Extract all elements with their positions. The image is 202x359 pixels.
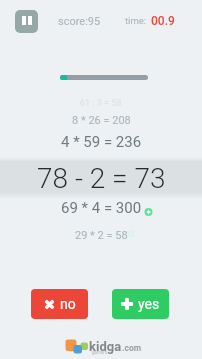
staticText: 61 : 3 = 58 (80, 98, 122, 109)
staticText: .com (122, 343, 142, 353)
staticText: time: (125, 15, 147, 26)
staticText: no (60, 296, 76, 312)
staticText: kidga (89, 339, 122, 354)
staticText: 69 * 4 = 300 (61, 199, 142, 217)
staticText: 00.9 (151, 14, 175, 28)
staticText: yes (138, 296, 160, 312)
button[interactable]: Pause (15, 10, 38, 33)
button[interactable]: no (31, 289, 88, 319)
staticText: 29 * 2 = 58 (75, 229, 128, 242)
staticText: 78 - 2 = 73 (37, 162, 166, 195)
staticText: score:95 (58, 15, 101, 28)
staticText: gamers (92, 350, 108, 355)
staticText: 8 * 26 = 208 (72, 114, 131, 127)
staticText: 4 * 59 = 236 (61, 133, 142, 151)
button[interactable]: yes (112, 289, 169, 319)
